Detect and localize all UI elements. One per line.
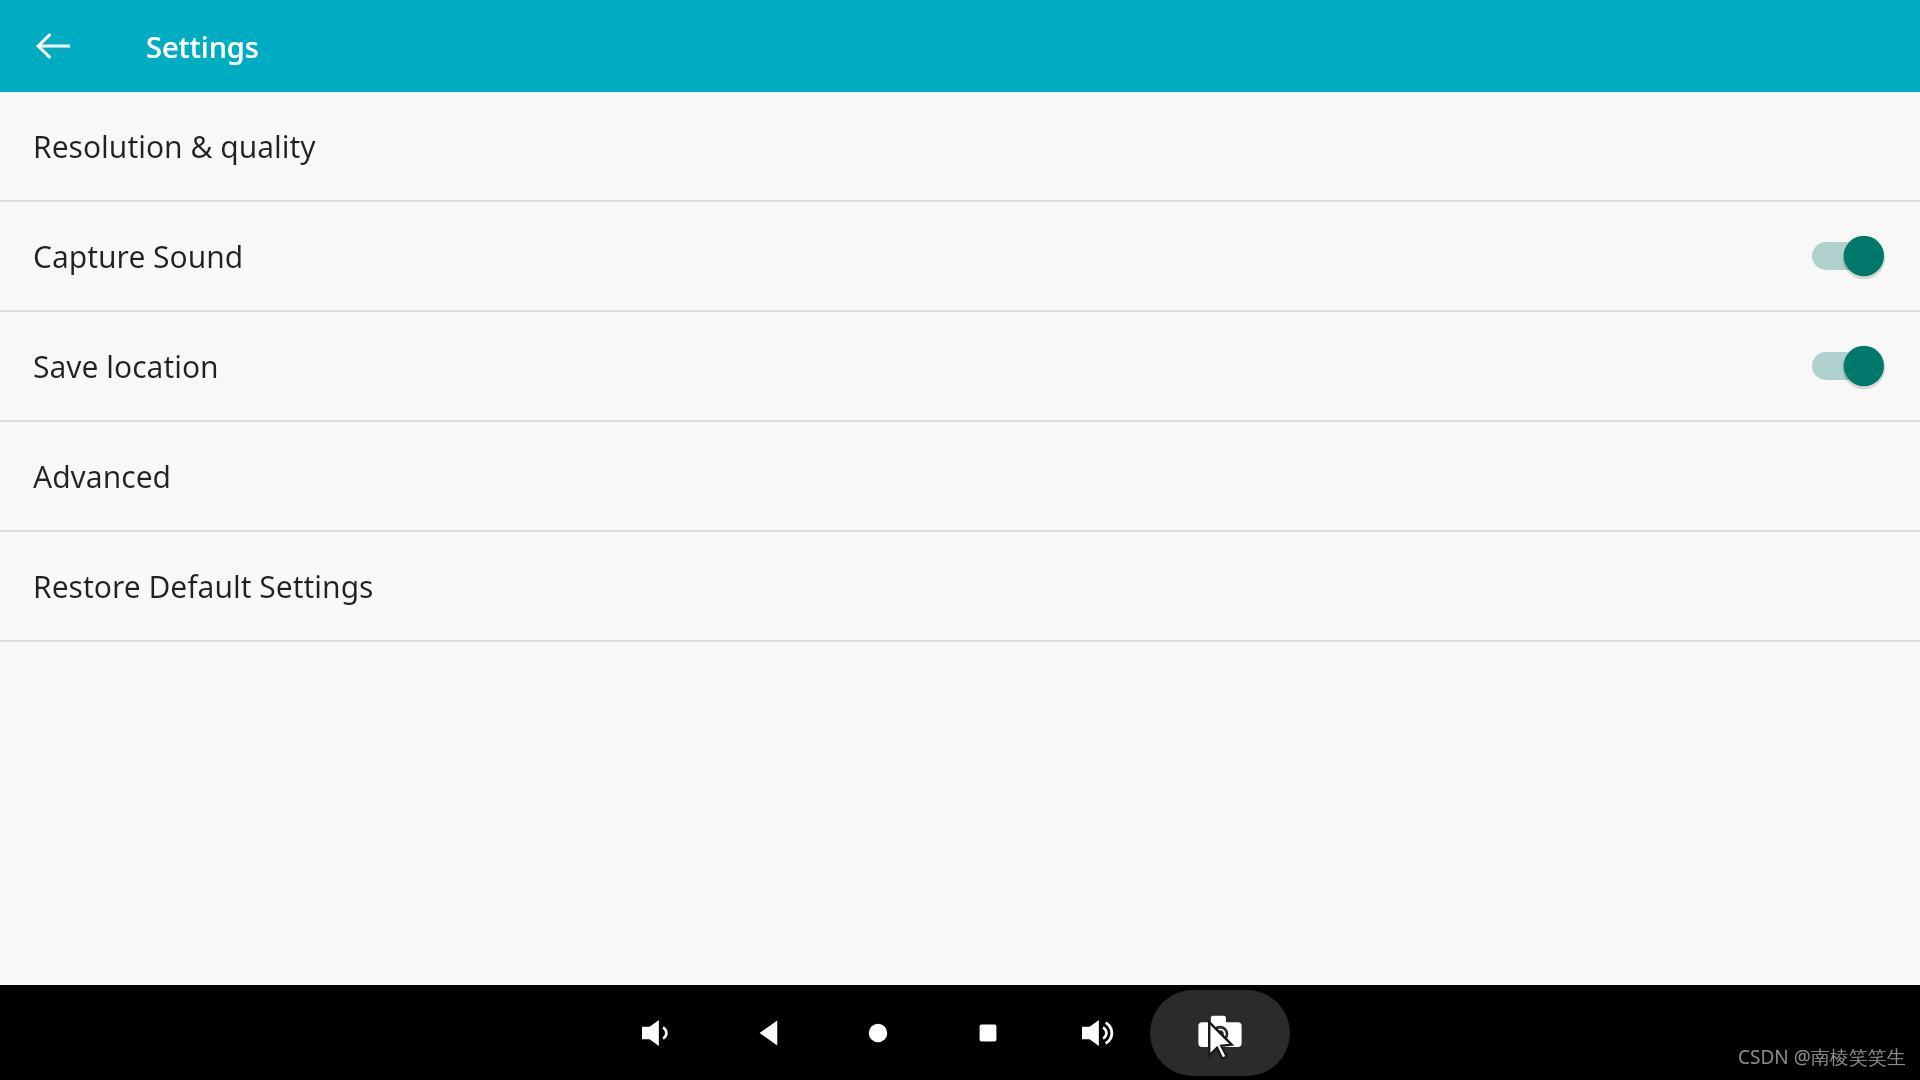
staticText: CSDN @南棱笑笑生 (1738, 1044, 1906, 1070)
button[interactable]: Resolution & quality (0, 92, 1920, 200)
button[interactable]: On (1812, 342, 1884, 390)
button[interactable]: Recent apps (960, 1005, 1016, 1061)
staticText: Save location (33, 346, 1812, 387)
button[interactable]: Back (26, 18, 82, 74)
button[interactable]: On (1812, 232, 1884, 280)
button[interactable]: Back (740, 1005, 796, 1061)
staticText: Resolution & quality (33, 126, 1884, 167)
button[interactable]: Screenshot (1150, 990, 1290, 1076)
staticText: Advanced (33, 456, 1884, 497)
button[interactable]: Restore Default Settings (0, 532, 1920, 640)
button[interactable]: Volume down (630, 1005, 686, 1061)
button[interactable]: Home (850, 1005, 906, 1061)
button[interactable]: Volume up (1070, 1005, 1126, 1061)
button[interactable]: Advanced (0, 422, 1920, 530)
staticText: Restore Default Settings (33, 566, 1884, 607)
button[interactable]: Save location (0, 312, 1920, 420)
staticText: Settings (146, 27, 259, 66)
button[interactable]: Capture Sound (0, 202, 1920, 310)
staticText: Capture Sound (33, 236, 1812, 277)
